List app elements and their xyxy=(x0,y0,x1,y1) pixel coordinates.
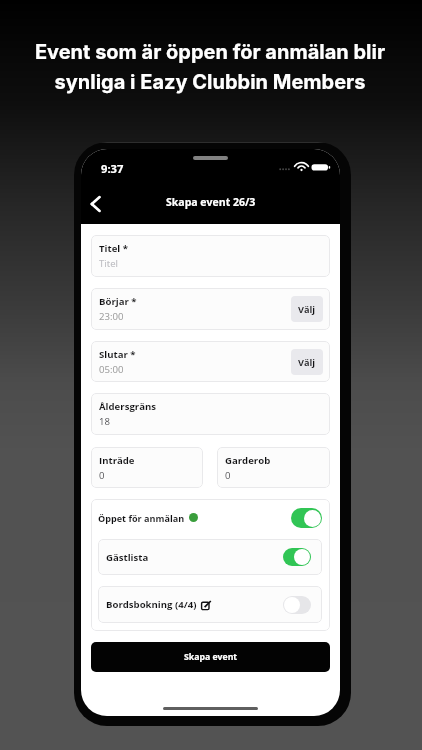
staticText: Öppet för anmälan xyxy=(98,512,185,524)
staticText: 0 xyxy=(99,469,105,482)
staticText: Skapa event xyxy=(184,651,238,663)
button[interactable]: Öppet för anmälan xyxy=(98,507,322,528)
staticText: Slutar * xyxy=(99,348,136,361)
staticText: Bordsbokning (4/4) xyxy=(106,598,197,611)
button[interactable]: Välj xyxy=(291,296,323,322)
button[interactable]: Toggle on xyxy=(291,508,322,528)
staticText: Titel xyxy=(99,257,118,270)
staticText: 0 xyxy=(225,469,231,482)
staticText: 05:00 xyxy=(99,363,124,376)
button[interactable]: Inträde xyxy=(91,447,203,488)
button[interactable]: Toggle on xyxy=(283,548,311,566)
staticText: Välj xyxy=(298,356,316,369)
button[interactable]: Åldersgräns xyxy=(91,393,330,435)
staticText: Börjar * xyxy=(99,295,137,308)
staticText: 23:00 xyxy=(99,310,124,323)
button[interactable]: Toggle off xyxy=(283,596,311,614)
button[interactable]: Bordsbokning (4/4) xyxy=(98,586,322,623)
staticText: Event som är öppen för anmälan blir synl… xyxy=(0,40,421,94)
button[interactable]: Titel * xyxy=(91,235,330,277)
staticText: 9:37 xyxy=(101,161,124,176)
button[interactable]: Slutar * xyxy=(91,341,330,382)
staticText: 18 xyxy=(99,415,110,428)
button[interactable]: Välj xyxy=(291,349,323,375)
staticText: Gästlista xyxy=(106,551,149,564)
staticText: Skapa event 26/3 xyxy=(166,195,256,209)
button[interactable]: Skapa event xyxy=(91,642,330,672)
staticText: Välj xyxy=(298,303,316,316)
staticText: Åldersgräns xyxy=(99,400,157,413)
button[interactable]: Back xyxy=(84,192,108,216)
staticText: Inträde xyxy=(99,454,135,467)
button[interactable]: Börjar * xyxy=(91,288,330,330)
staticText: Garderob xyxy=(225,454,271,467)
button[interactable]: Gästlista xyxy=(98,539,322,575)
button[interactable]: Garderob xyxy=(217,447,330,488)
staticText: Titel * xyxy=(99,242,128,255)
